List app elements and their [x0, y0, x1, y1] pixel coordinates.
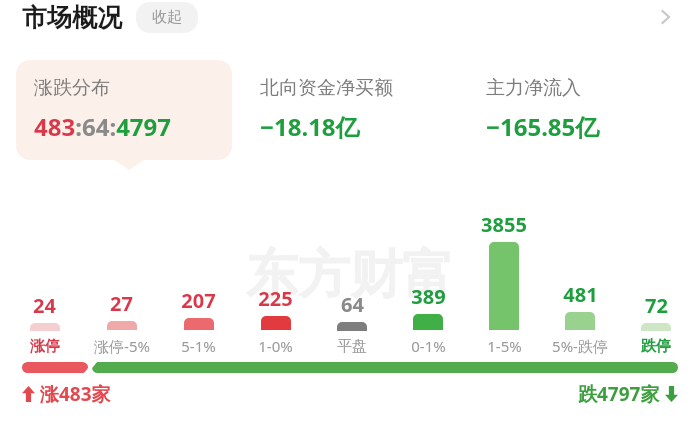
staticText: 225: [258, 285, 293, 312]
button[interactable]: 24: [6, 194, 83, 362]
button[interactable]: 64: [314, 194, 390, 362]
staticText: 涨停: [30, 337, 60, 356]
staticText: 1-5%: [487, 336, 522, 356]
staticText: 涨483家: [40, 381, 111, 407]
staticText: 481: [563, 281, 598, 308]
staticText: 平盘: [337, 337, 367, 356]
button[interactable]: 主力净流入: [468, 60, 684, 160]
staticText: 主力净流入: [486, 76, 581, 100]
button[interactable]: 207: [160, 194, 237, 362]
staticText: 东方财富: [246, 242, 454, 308]
button[interactable]: 225: [237, 194, 314, 362]
staticText: −165.85亿: [486, 110, 600, 143]
staticText: 跌停: [641, 337, 671, 356]
staticText: 收起: [152, 8, 182, 27]
button[interactable]: 481: [542, 194, 618, 362]
staticText: 北向资金净买额: [260, 76, 393, 100]
staticText: 5%-跌停: [552, 336, 608, 356]
staticText: 64: [341, 291, 364, 318]
button[interactable]: 展开更多: [648, 0, 682, 34]
button[interactable]: 涨跌分布: [16, 60, 232, 160]
button[interactable]: 北向资金净买额: [242, 60, 458, 160]
button[interactable]: 389: [390, 194, 466, 362]
staticText: 跌4797家: [578, 381, 660, 407]
staticText: 涨跌分布: [34, 76, 110, 100]
staticText: 483:64:4797: [34, 110, 172, 143]
button[interactable]: 收起: [136, 2, 198, 33]
button[interactable]: 27: [83, 194, 160, 362]
staticText: 72: [645, 292, 668, 319]
staticText: 24: [33, 292, 56, 319]
staticText: 5-1%: [181, 336, 216, 356]
staticText: 27: [110, 290, 133, 317]
staticText: −18.18亿: [260, 110, 360, 143]
staticText: 207: [181, 287, 216, 314]
staticText: 市场概况: [22, 2, 122, 33]
button[interactable]: 3855: [466, 194, 542, 362]
staticText: 3855: [481, 211, 527, 238]
staticText: 389: [411, 283, 446, 310]
staticText: 涨停-5%: [94, 336, 150, 356]
staticText: 0-1%: [411, 336, 446, 356]
staticText: 1-0%: [258, 336, 293, 356]
button[interactable]: 72: [618, 194, 694, 362]
